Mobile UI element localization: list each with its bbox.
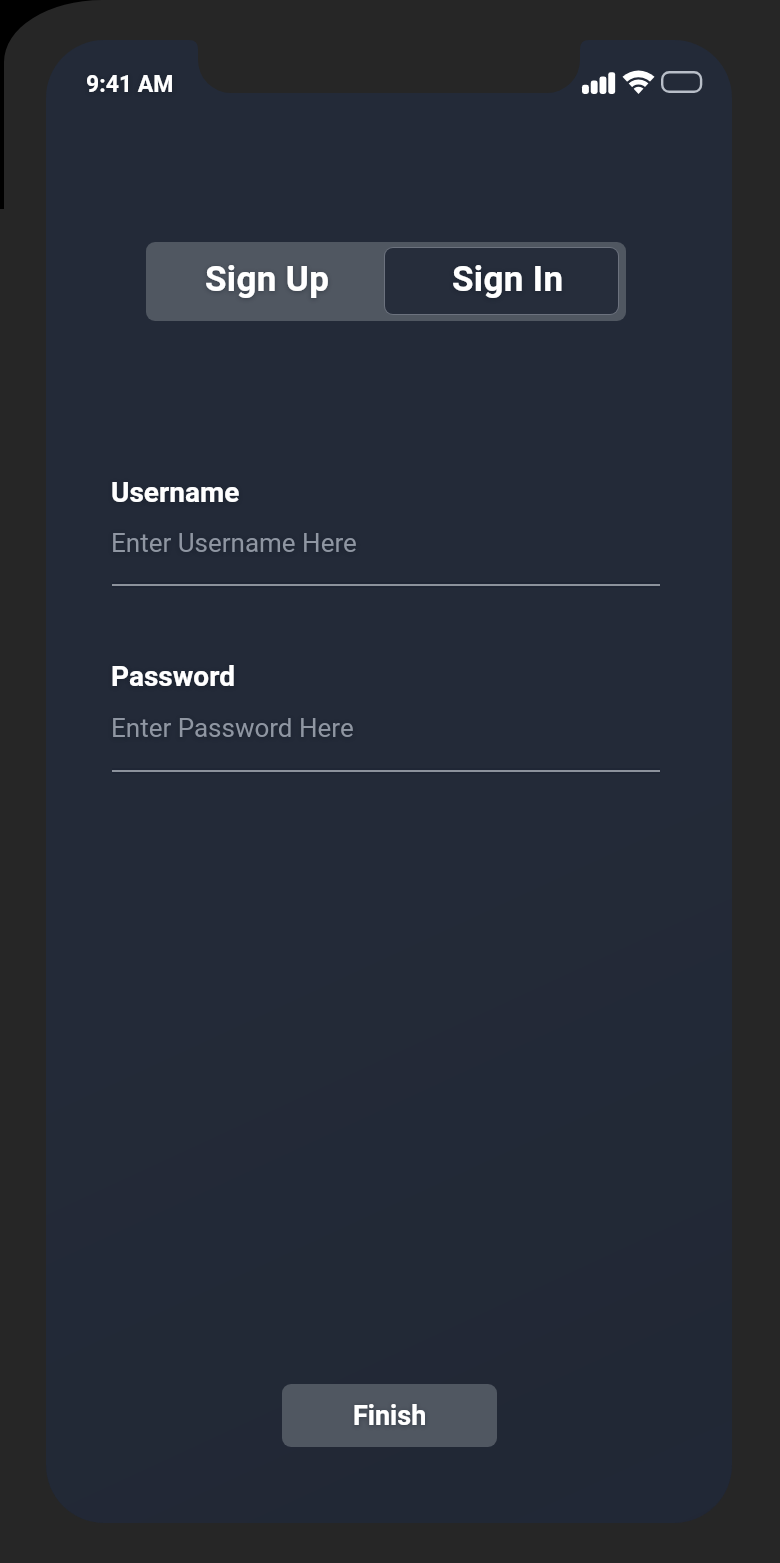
other: Cellular signal — [582, 71, 615, 94]
other: Battery — [661, 71, 703, 94]
staticText: Enter Password Here — [111, 713, 354, 743]
staticText: Enter Username Here — [111, 528, 357, 558]
staticText: Sign Up — [205, 259, 330, 300]
button[interactable]: Password — [111, 660, 235, 693]
staticText: 9:41 AM — [86, 71, 174, 98]
staticText: Username — [111, 476, 240, 509]
staticText: Finish — [353, 1400, 427, 1432]
button[interactable]: Sign Up — [146, 242, 385, 321]
staticText: Password — [111, 660, 235, 693]
button[interactable]: Username — [111, 476, 240, 509]
button[interactable]: Sign In — [385, 248, 618, 314]
staticText: Sign In — [452, 259, 564, 300]
button[interactable]: Finish — [282, 1384, 497, 1447]
other: Wi-Fi — [623, 71, 654, 94]
